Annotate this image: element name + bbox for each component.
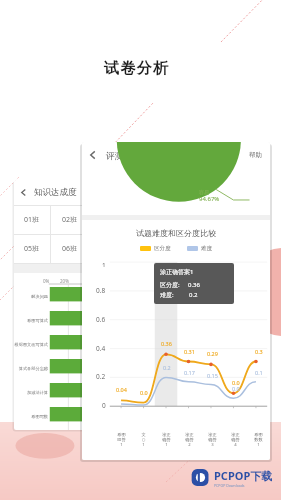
staticText: PCPOP Downloads xyxy=(214,483,245,488)
staticText: 加减法计算 xyxy=(27,390,48,395)
staticText: 看图 数数 1 xyxy=(254,432,263,447)
staticText: 区分度 xyxy=(154,245,171,252)
staticText: 0.31 xyxy=(184,348,195,355)
staticText: 94.67% xyxy=(199,195,220,203)
staticText: 0.36 xyxy=(188,281,200,289)
staticText: 算式各部分忘称 xyxy=(18,366,48,371)
staticText: 0.0 xyxy=(140,389,148,396)
staticText: 评测分析 - xyxy=(106,149,148,161)
staticText: 0.04 xyxy=(116,386,127,393)
staticText: 难度 xyxy=(201,245,212,252)
staticText: 看图写数 xyxy=(31,414,48,419)
staticText: 解决问题 xyxy=(31,294,48,299)
staticText: 看图写算式 xyxy=(27,318,48,323)
staticText: 容易 xyxy=(199,189,209,195)
staticText: 文 ○ 1 xyxy=(141,432,146,447)
staticText: 20% xyxy=(60,278,69,284)
staticText: 05班 xyxy=(24,244,40,254)
button[interactable]: 01班 xyxy=(14,206,50,234)
button[interactable]: Back xyxy=(19,188,28,197)
staticText: 根据图文改写算式 xyxy=(14,342,48,347)
button[interactable]: 02班 xyxy=(51,206,88,234)
staticText: 0.15 xyxy=(207,372,218,379)
staticText: 0.1 xyxy=(255,369,263,376)
staticText: 涂正 确答 4 xyxy=(231,432,240,447)
staticText: 看图 回答 1 xyxy=(117,432,126,447)
staticText: 06班 xyxy=(62,244,78,254)
staticText: 区分度: xyxy=(160,281,180,289)
staticText: 0.17 xyxy=(184,369,195,376)
staticText: 02班 xyxy=(62,215,78,225)
staticText: 试卷分析 xyxy=(104,59,170,78)
staticText: 0.2 xyxy=(189,291,198,299)
staticText: 难度: xyxy=(160,291,174,299)
button[interactable]: 帮助 xyxy=(247,149,264,161)
staticText: 0.6 xyxy=(96,315,106,324)
staticText: 0.2 xyxy=(96,372,106,381)
staticText: 帮助 xyxy=(249,151,262,159)
staticText: 涂正 确答 1 xyxy=(162,432,171,447)
staticText: 涂正 确答 2 xyxy=(185,432,194,447)
staticText: 知识达成度 xyxy=(34,187,77,198)
staticText: 0.0 xyxy=(232,379,240,386)
staticText: 0.0 xyxy=(232,385,240,392)
staticText: PCPOP下载 xyxy=(214,468,273,483)
staticText: 0.36 xyxy=(161,340,172,347)
staticText: 0.3 xyxy=(255,348,263,355)
staticText: 0.8 xyxy=(96,286,106,295)
staticText: 0.29 xyxy=(207,350,218,357)
staticText: 涂正 确答 3 xyxy=(208,432,217,447)
button[interactable]: 05班 xyxy=(14,235,50,263)
staticText: 1 xyxy=(102,261,106,267)
staticText: 试题难度和区分度比较 xyxy=(136,228,216,238)
staticText: 0 xyxy=(102,401,106,410)
staticText: 0.2 xyxy=(163,364,171,371)
button[interactable]: Back xyxy=(14,180,88,205)
button[interactable]: PCPOP watermark xyxy=(190,467,273,488)
button[interactable]: Back xyxy=(88,150,98,160)
staticText: 01班 xyxy=(24,215,40,225)
button[interactable]: 06班 xyxy=(51,235,88,263)
staticText: 0% xyxy=(43,278,50,284)
staticText: 涂正确答案1 xyxy=(160,268,194,276)
staticText: 0.4 xyxy=(96,344,106,353)
